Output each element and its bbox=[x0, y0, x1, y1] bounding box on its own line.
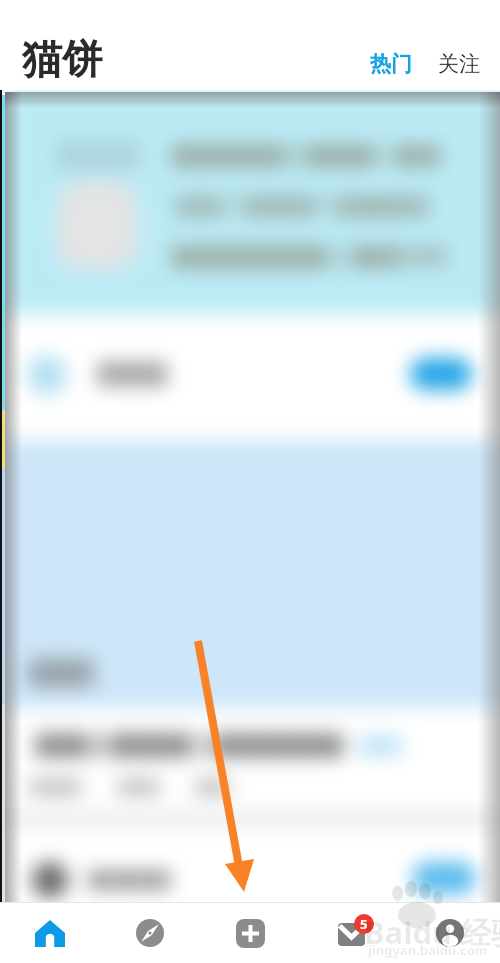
button[interactable]: Add bbox=[236, 919, 265, 948]
staticText: 猫饼 bbox=[22, 34, 102, 84]
other: Messages bbox=[329, 912, 371, 954]
staticText: jingyan.baidu.com bbox=[368, 941, 488, 959]
button[interactable]: 关注 bbox=[432, 41, 486, 87]
button[interactable]: 热门 bbox=[364, 41, 418, 87]
staticText: Baidu 经验 bbox=[364, 911, 500, 953]
button[interactable]: Profile bbox=[400, 903, 500, 963]
button[interactable]: Add bbox=[200, 903, 300, 963]
other: Profile bbox=[436, 919, 464, 947]
staticText: 关注 bbox=[438, 51, 480, 77]
staticText: 热门 bbox=[370, 51, 412, 77]
button[interactable]: Home bbox=[0, 903, 100, 963]
button[interactable]: Messages bbox=[300, 903, 400, 963]
other: Home bbox=[35, 920, 65, 947]
staticText: 5 bbox=[360, 915, 368, 933]
button[interactable]: Discover bbox=[100, 903, 200, 963]
other: Discover bbox=[136, 919, 164, 947]
